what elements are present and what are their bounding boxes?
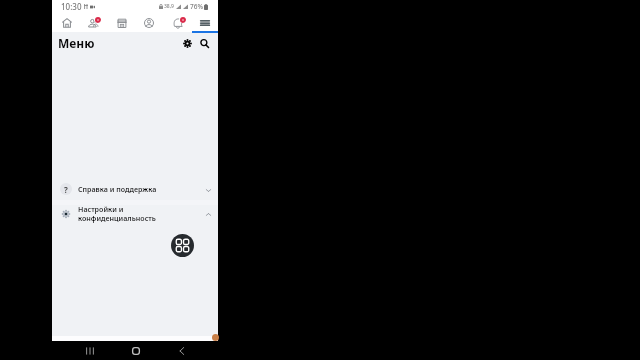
button[interactable]: Expand: [202, 184, 214, 196]
staticText: ?: [64, 184, 68, 195]
button[interactable]: Settings: [179, 35, 195, 51]
staticText: 10:30: [61, 1, 82, 12]
staticText: Меню: [58, 35, 95, 51]
staticText: Настройки и конфиденциальность: [78, 204, 156, 223]
button[interactable]: Chat bubble: [212, 334, 219, 341]
staticText: 38,9: [164, 3, 174, 10]
staticText: Справка и поддержка: [78, 184, 157, 194]
button[interactable]: Marketplace: [109, 13, 135, 32]
button[interactable]: Back: [173, 341, 191, 360]
button[interactable]: Home: [54, 13, 80, 32]
button[interactable]: Menu: [192, 13, 218, 32]
button[interactable]: Настройки и конфиденциальность: [52, 202, 218, 225]
button[interactable]: Collapse: [202, 208, 214, 220]
button[interactable]: App grid: [171, 234, 194, 257]
button[interactable]: Home: [127, 341, 145, 360]
button[interactable]: Friends: [80, 13, 106, 32]
staticText: 76%: [190, 2, 203, 11]
button[interactable]: Profile: [136, 13, 162, 32]
button[interactable]: Notifications: [165, 13, 191, 32]
button[interactable]: Recents: [81, 341, 99, 360]
button[interactable]: Search: [196, 35, 212, 51]
button[interactable]: ?: [52, 181, 218, 197]
